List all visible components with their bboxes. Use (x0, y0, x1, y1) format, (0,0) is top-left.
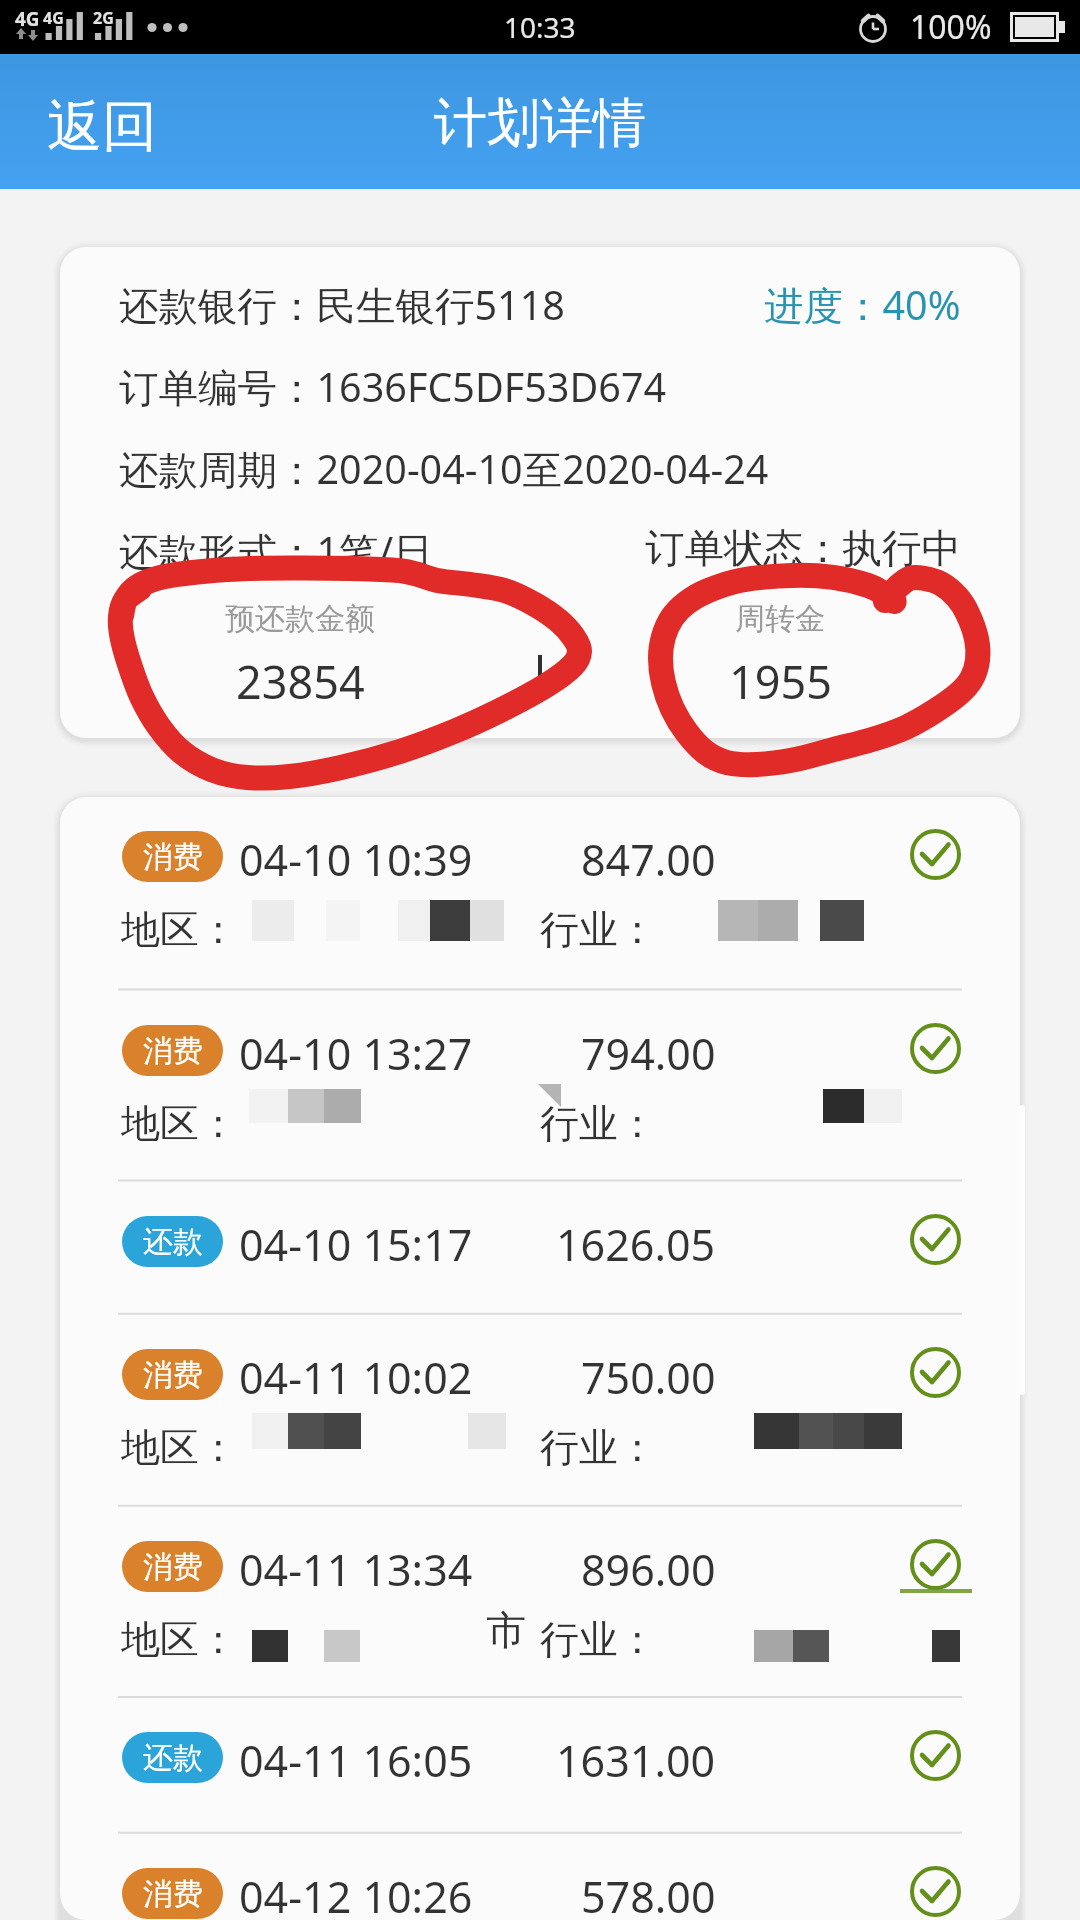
staticText: 04-10 15:17 (239, 1215, 473, 1274)
staticText: 04-11 10:02 (239, 1348, 473, 1407)
button[interactable]: 消费 (60, 1834, 1020, 1920)
staticText: 还款银行：民生银行5118 (119, 278, 565, 332)
staticText: 1631.00 (556, 1731, 716, 1790)
button[interactable]: 消费 (60, 1315, 1020, 1505)
staticText: 794.00 (581, 1024, 716, 1083)
button[interactable]: 消费 (60, 797, 1020, 989)
staticText: 10:33 (504, 8, 576, 46)
staticText: 进度：40% (764, 278, 961, 332)
button[interactable]: 还款 (60, 1182, 1020, 1313)
staticText: 订单编号：1636FC5DF53D674 (119, 360, 667, 414)
staticText: 地区： (121, 1615, 238, 1664)
staticText: 04-12 10:26 (239, 1867, 473, 1920)
staticText: 896.00 (581, 1540, 716, 1599)
staticText: 市 (486, 1605, 526, 1655)
staticText: 消费 (143, 1356, 203, 1394)
staticText: 1955 (729, 651, 832, 712)
staticText: 消费 (143, 1032, 203, 1070)
staticText: 04-10 13:27 (239, 1024, 473, 1083)
staticText: 行业： (540, 1615, 657, 1664)
staticText: 周转金 (735, 600, 825, 638)
staticText: 消费 (143, 1548, 203, 1586)
staticText: 还款周期：2020-04-10至2020-04-24 (119, 442, 769, 496)
button[interactable]: 还款 (60, 1698, 1020, 1832)
staticText: 消费 (143, 1875, 203, 1913)
button[interactable]: 消费 (60, 991, 1020, 1180)
staticText: 订单状态：执行中 (645, 524, 961, 574)
staticText: 578.00 (581, 1867, 716, 1920)
button[interactable]: 消费 (60, 1507, 1020, 1696)
button[interactable]: 返回 (0, 64, 187, 179)
staticText: 计划详情 (434, 90, 646, 157)
staticText: 行业： (540, 1423, 657, 1472)
staticText: 还款 (143, 1739, 203, 1777)
staticText: 返回 (47, 92, 157, 161)
staticText: 地区： (121, 1423, 238, 1472)
staticText: 847.00 (581, 830, 716, 889)
staticText: 4G (15, 6, 40, 32)
staticText: 地区： (121, 905, 238, 954)
staticText: 行业： (540, 1099, 657, 1148)
staticText: 2G (93, 7, 114, 29)
staticText: 1626.05 (556, 1215, 716, 1274)
staticText: 行业： (540, 905, 657, 954)
staticText: 预还款金额 (225, 600, 375, 638)
staticText: 还款 (143, 1223, 203, 1261)
staticText: 100% (910, 5, 992, 49)
staticText: 还款形式：1笔/日 (119, 524, 433, 578)
staticText: 750.00 (581, 1348, 716, 1407)
staticText: 地区： (121, 1099, 238, 1148)
staticText: 4G (43, 7, 64, 29)
staticText: 消费 (143, 838, 203, 876)
staticText: 04-11 13:34 (239, 1540, 473, 1599)
staticText: 04-10 10:39 (239, 830, 473, 889)
staticText: 23854 (236, 651, 365, 712)
staticText: 04-11 16:05 (239, 1731, 473, 1790)
